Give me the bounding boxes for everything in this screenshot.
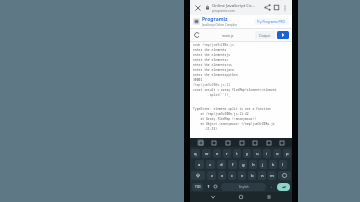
button[interactable]: Toolbar item 5 <box>251 139 258 146</box>
staticText: 30001 <box>193 78 203 82</box>
staticText: v <box>241 173 244 179</box>
staticText: n <box>261 173 264 179</box>
staticText: z <box>211 173 213 179</box>
button[interactable]: r <box>223 149 231 158</box>
button[interactable]: v <box>238 171 246 180</box>
button[interactable]: Toolbar item 4 <box>238 139 245 146</box>
staticText: p <box>286 151 289 157</box>
staticText: q <box>194 151 197 157</box>
button[interactable]: Tabs <box>272 3 281 12</box>
button[interactable]: y <box>243 149 251 158</box>
staticText: Output <box>259 33 271 38</box>
staticText: e <box>216 151 219 157</box>
button[interactable]: l <box>279 160 287 169</box>
staticText: u <box>256 151 259 157</box>
button[interactable]: z <box>207 171 216 180</box>
staticText: Try Programiz PRO <box>257 20 286 24</box>
button[interactable]: Toolbar item 1 <box>197 139 204 146</box>
button[interactable]: Reset <box>193 31 201 39</box>
staticText: j <box>262 162 264 168</box>
staticText: x <box>221 173 224 179</box>
staticText: programiz.com <box>212 9 235 13</box>
staticText: k <box>272 162 275 168</box>
staticText: enter the elements <box>193 48 227 52</box>
staticText: English <box>239 185 249 189</box>
staticText: m <box>270 173 274 179</box>
button[interactable]: q <box>191 149 200 158</box>
staticText: i <box>266 151 268 157</box>
staticText: h <box>252 162 255 168</box>
button[interactable]: c <box>228 171 236 180</box>
button[interactable]: w <box>202 149 211 158</box>
staticText: enter the elementsc <box>193 58 229 62</box>
staticText: w <box>205 151 209 157</box>
staticText: /tmp/jsm9vZ08a.js:11 <box>193 83 231 87</box>
staticText: s <box>209 162 212 168</box>
button[interactable]: g <box>239 160 247 169</box>
button[interactable]: p <box>283 149 291 158</box>
staticText: at Array.flatMap (<anonymous>) <box>193 117 257 121</box>
staticText: enter the elementsjs <box>193 53 231 57</box>
staticText: r <box>226 151 228 157</box>
button[interactable]: t <box>233 149 241 158</box>
button[interactable]: Output <box>255 31 275 39</box>
staticText: enter the elementsjava <box>193 68 234 72</box>
staticText: y <box>246 151 249 157</box>
button[interactable]: x <box>218 171 226 180</box>
button[interactable]: Emoji <box>205 183 212 190</box>
staticText: at /tmp/jsm9vZ08a.js:11:42 <box>193 112 249 116</box>
button[interactable]: o <box>273 149 281 158</box>
staticText: enter the elementscss <box>193 63 232 67</box>
button[interactable]: ?123 <box>192 183 203 191</box>
staticText: d <box>220 162 223 168</box>
staticText: Programiz <box>202 16 228 23</box>
staticText: TypeError: element.split is not a functi… <box>193 107 271 111</box>
button[interactable]: Share <box>263 3 272 12</box>
staticText: main.js <box>222 33 234 38</box>
button[interactable]: Language <box>212 183 219 190</box>
button[interactable]: Toolbar item 3 <box>224 139 231 146</box>
staticText: JavaScript Online Compiler <box>202 23 237 27</box>
button[interactable]: Close <box>193 3 203 13</box>
button[interactable]: Period <box>268 183 275 190</box>
staticText: Online JavaScript Co... <box>212 3 255 9</box>
button[interactable]: h <box>249 160 257 169</box>
staticText: :11:33) <box>193 127 218 131</box>
staticText: o <box>276 151 279 157</box>
button[interactable]: Toolbar item 6 <box>265 139 272 146</box>
button[interactable]: More options <box>281 4 289 12</box>
staticText: node /tmp/jsm9vZ08a.js <box>193 43 234 47</box>
staticText: .split('')); <box>193 93 231 97</box>
button[interactable]: Shift <box>191 171 205 180</box>
button[interactable]: n <box>258 171 266 180</box>
button[interactable]: f <box>228 160 237 169</box>
button[interactable]: j <box>259 160 267 169</box>
staticText: t <box>236 151 238 157</box>
button[interactable]: Back <box>208 192 218 202</box>
button[interactable]: Enter <box>277 183 290 191</box>
button[interactable]: m <box>268 171 276 180</box>
button[interactable]: Recents <box>264 192 274 202</box>
staticText: l <box>282 162 284 168</box>
button[interactable]: Home <box>236 192 246 202</box>
button[interactable]: Backspace <box>278 171 291 180</box>
button[interactable]: d <box>217 160 226 169</box>
button[interactable]: a <box>195 160 204 169</box>
button[interactable]: u <box>253 149 261 158</box>
staticText: enter the elementspython <box>193 73 238 77</box>
button[interactable]: b <box>248 171 256 180</box>
button[interactable]: e <box>213 149 221 158</box>
button[interactable]: k <box>269 160 277 169</box>
staticText: c <box>231 173 234 179</box>
button[interactable]: s <box>206 160 215 169</box>
staticText: g <box>242 162 245 168</box>
button[interactable]: Menu <box>193 18 200 25</box>
button[interactable]: Toolbar item 7 <box>278 139 285 146</box>
staticText: at Object.<anonymous> (/tmp/jsm9vZ08a.js <box>193 122 275 126</box>
button[interactable]: Try Programiz PRO <box>254 18 289 25</box>
button[interactable]: i <box>263 149 271 158</box>
button[interactable]: English <box>221 183 266 191</box>
button[interactable]: Toolbar item 2 <box>210 139 217 146</box>
staticText: f <box>232 162 234 168</box>
button[interactable]: Run <box>277 31 289 39</box>
